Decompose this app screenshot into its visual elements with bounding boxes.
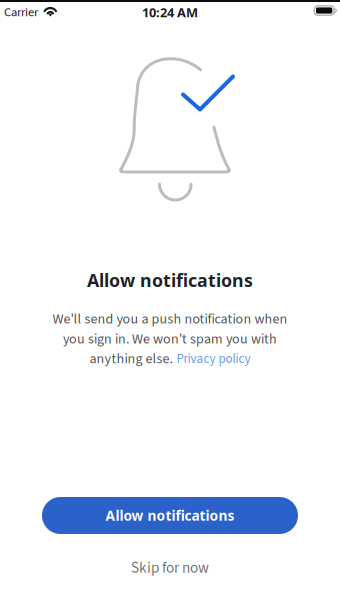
staticText: We'll send you a push notification when	[52, 309, 287, 329]
staticText: 10:24 AM	[142, 3, 198, 21]
staticText: Carrier	[4, 3, 38, 21]
staticText: Skip for now	[131, 557, 209, 579]
button[interactable]: Privacy policy	[176, 350, 250, 368]
staticText: you sign in. We won't spam you with	[63, 329, 277, 349]
button[interactable]: Allow notifications	[42, 497, 298, 534]
button[interactable]: Skip for now	[0, 557, 340, 579]
staticText: Privacy policy	[176, 350, 250, 368]
staticText: Allow notifications	[87, 268, 253, 292]
staticText: Allow notifications	[105, 506, 234, 525]
staticText: anything else.	[89, 349, 172, 369]
